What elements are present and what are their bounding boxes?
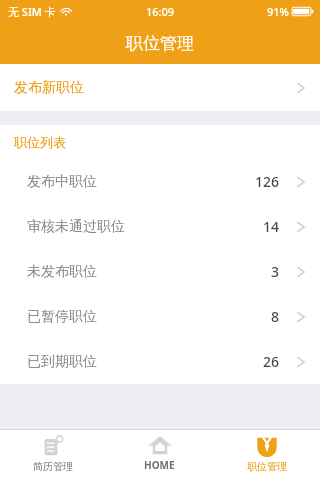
staticText: 未发布职位 xyxy=(27,263,97,281)
staticText: 职位管理 xyxy=(247,460,287,473)
staticText: 126 xyxy=(255,172,280,191)
other: 职位管理 xyxy=(256,435,278,457)
staticText: 91% xyxy=(267,4,289,19)
staticText: 已到期职位 xyxy=(27,353,97,371)
staticText: 已暂停职位 xyxy=(27,308,97,326)
staticText: 无 SIM 卡 xyxy=(8,4,56,19)
staticText: 3 xyxy=(271,262,280,281)
button[interactable]: 发布中职位 xyxy=(0,159,320,204)
staticText: 14 xyxy=(263,217,280,236)
other: HOME xyxy=(148,435,172,455)
button[interactable]: 审核未通过职位 xyxy=(0,204,320,249)
button[interactable]: HOME xyxy=(106,430,213,480)
staticText: 审核未通过职位 xyxy=(27,218,125,236)
button[interactable]: 未发布职位 xyxy=(0,249,320,294)
button[interactable]: 已到期职位 xyxy=(0,339,320,384)
staticText: 16:09 xyxy=(146,4,175,19)
button[interactable]: 已暂停职位 xyxy=(0,294,320,339)
staticText: HOME xyxy=(144,458,175,472)
button[interactable]: 职位管理 xyxy=(213,430,320,480)
staticText: 8 xyxy=(271,307,280,326)
staticText: 发布新职位 xyxy=(14,79,84,97)
button[interactable]: 发布新职位 xyxy=(0,64,320,111)
button[interactable]: 简历管理 xyxy=(0,430,106,480)
staticText: 26 xyxy=(263,352,280,371)
staticText: 职位管理 xyxy=(126,33,194,54)
staticText: 职位列表 xyxy=(14,134,66,150)
staticText: 发布中职位 xyxy=(27,173,97,191)
other: 简历管理 xyxy=(42,435,64,457)
staticText: 简历管理 xyxy=(33,460,73,473)
